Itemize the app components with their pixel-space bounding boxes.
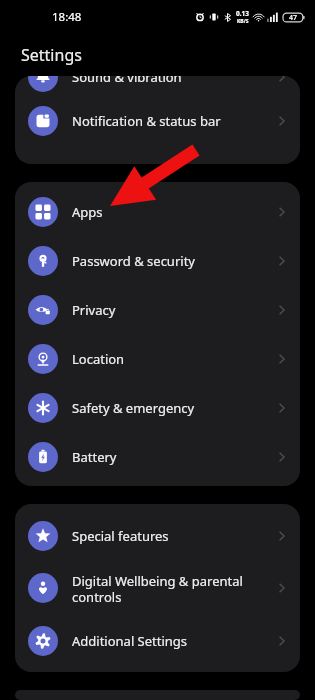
staticText: Additional Settings (72, 632, 268, 650)
staticText: 18:48 (52, 9, 82, 25)
staticText: KB/S (237, 18, 249, 25)
button[interactable]: Location (15, 334, 300, 383)
button[interactable]: Digital Wellbeing & parental controls (15, 560, 300, 616)
staticText: Settings (21, 44, 82, 66)
button[interactable]: Apps (15, 187, 300, 236)
button[interactable]: Battery (15, 432, 300, 481)
staticText: Location (72, 350, 268, 368)
staticText: Password & security (72, 252, 268, 270)
staticText: 0.13 (236, 9, 249, 18)
button[interactable]: Additional Settings (15, 616, 300, 665)
button[interactable]: Sound & vibration (15, 76, 300, 101)
staticText: Safety & emergency (72, 399, 268, 417)
staticText: Privacy (72, 301, 268, 319)
button[interactable]: Safety & emergency (15, 383, 300, 432)
staticText: Battery (72, 448, 268, 466)
button[interactable]: Privacy (15, 285, 300, 334)
staticText: Sound & vibration (72, 76, 268, 86)
button[interactable]: Special features (15, 511, 300, 560)
staticText: Digital Wellbeing & parental controls (72, 572, 268, 605)
staticText: Notification & status bar (72, 112, 268, 130)
staticText: Special features (72, 527, 268, 545)
button[interactable]: Notification & status bar (15, 101, 300, 140)
button[interactable]: Password & security (15, 236, 300, 285)
staticText: 47 (289, 13, 298, 23)
staticText: Apps (72, 203, 268, 221)
